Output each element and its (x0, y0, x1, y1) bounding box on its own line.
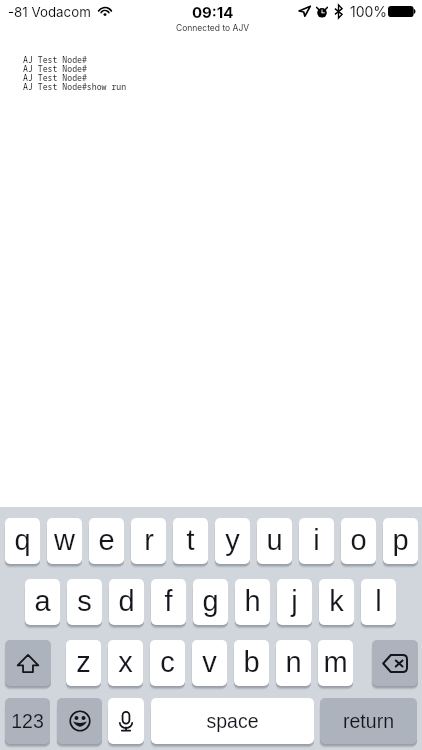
button[interactable]: Backspace (372, 640, 418, 686)
staticText: z (76, 646, 91, 678)
button[interactable]: e (89, 518, 124, 564)
staticText: o (350, 524, 367, 556)
staticText: return (343, 710, 394, 732)
button[interactable]: a (25, 579, 60, 625)
staticText: w (54, 524, 75, 556)
button[interactable]: f (151, 579, 186, 625)
staticText: k (329, 585, 344, 617)
staticText: c (160, 646, 175, 678)
staticText: AJ Test Node# (23, 72, 87, 83)
button[interactable]: g (193, 579, 228, 625)
staticText: d (118, 585, 135, 617)
staticText: x (118, 646, 133, 678)
staticText: f (164, 585, 173, 617)
button[interactable]: Dictation (108, 698, 144, 744)
button[interactable]: space (151, 698, 314, 744)
button[interactable]: Shift (5, 640, 51, 686)
button[interactable]: k (319, 579, 354, 625)
staticText: g (202, 585, 219, 617)
staticText: q (14, 524, 31, 556)
button[interactable]: r (131, 518, 166, 564)
staticText: n (285, 646, 302, 678)
button[interactable]: s (67, 579, 102, 625)
staticText: space (206, 710, 259, 732)
staticText: u (266, 524, 283, 556)
button[interactable]: p (383, 518, 418, 564)
button[interactable]: i (299, 518, 334, 564)
button[interactable]: w (47, 518, 82, 564)
staticText: l (375, 585, 382, 617)
button[interactable]: t (173, 518, 208, 564)
button[interactable]: z (66, 640, 101, 686)
staticText: Connected to AJV (176, 23, 250, 33)
button[interactable]: Emoji (57, 698, 102, 744)
button[interactable]: h (235, 579, 270, 625)
staticText: r (144, 524, 154, 556)
button[interactable]: x (108, 640, 143, 686)
staticText: 123 (11, 710, 44, 732)
staticText: -81 Vodacom (8, 4, 91, 20)
staticText: i (313, 524, 320, 556)
button[interactable]: l (361, 579, 396, 625)
button[interactable]: c (150, 640, 185, 686)
staticText: AJ Test Node#show run (23, 81, 127, 92)
staticText: h (244, 585, 261, 617)
staticText: a (34, 585, 51, 617)
button[interactable]: q (5, 518, 40, 564)
staticText: y (225, 524, 240, 556)
button[interactable]: d (109, 579, 144, 625)
button[interactable]: n (276, 640, 311, 686)
staticText: 100% (350, 3, 388, 20)
staticText: p (392, 524, 409, 556)
button[interactable]: u (257, 518, 292, 564)
button[interactable]: 123 (5, 698, 50, 744)
button[interactable]: b (234, 640, 269, 686)
staticText: s (77, 585, 92, 617)
staticText: v (202, 646, 217, 678)
button[interactable]: j (277, 579, 312, 625)
button[interactable]: v (192, 640, 227, 686)
staticText: m (323, 646, 348, 678)
staticText: t (186, 524, 195, 556)
staticText: b (243, 646, 260, 678)
button[interactable]: o (341, 518, 376, 564)
staticText: j (291, 585, 298, 617)
button[interactable]: m (318, 640, 353, 686)
staticText: AJ Test Node# (23, 63, 87, 74)
button[interactable]: return (320, 698, 417, 744)
staticText: e (98, 524, 115, 556)
staticText: 09:14 (192, 3, 234, 21)
button[interactable]: y (215, 518, 250, 564)
staticText: AJ Test Node# (23, 54, 87, 65)
